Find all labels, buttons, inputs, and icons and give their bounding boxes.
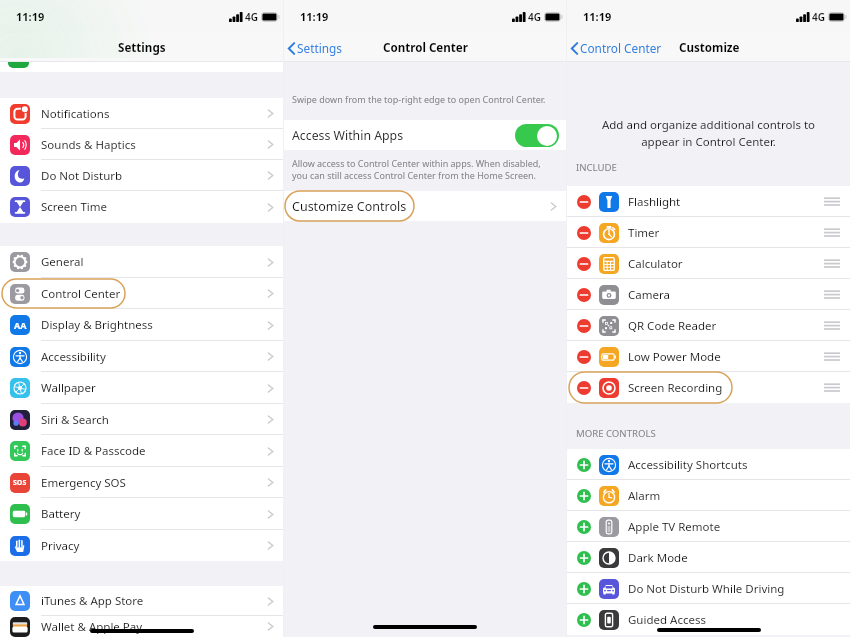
staticText: Customize Controls: [292, 198, 407, 215]
button[interactable]: Remove: [567, 310, 850, 341]
other: Remove: [577, 288, 591, 302]
staticText: Control Center: [41, 286, 121, 302]
staticText: INCLUDE: [576, 161, 617, 174]
button[interactable]: Access Within Apps: [284, 120, 566, 150]
other: Add: [577, 520, 591, 534]
other: Remove: [577, 226, 591, 240]
staticText: SOS: [13, 478, 27, 488]
staticText: Display & Brightness: [41, 317, 153, 333]
staticText: 4G: [812, 10, 825, 24]
staticText: Apple TV Remote: [628, 519, 721, 535]
button[interactable]: Back to Settings: [287, 40, 342, 56]
staticText: 11:19: [300, 9, 329, 24]
button[interactable]: Customize Controls: [284, 191, 566, 221]
button[interactable]: Remove: [567, 186, 850, 217]
other: Add: [577, 613, 591, 627]
button[interactable]: Add: [567, 542, 850, 573]
staticText: Timer: [628, 225, 660, 241]
staticText: Privacy: [41, 538, 80, 554]
staticText: Low Power Mode: [628, 349, 721, 365]
staticText: Control Center: [580, 40, 662, 56]
button[interactable]: Privacy: [0, 530, 283, 561]
staticText: Do Not Disturb While Driving: [628, 581, 785, 597]
button[interactable]: Remove: [567, 279, 850, 310]
button[interactable]: Wallpaper: [0, 372, 283, 404]
other: Reorder: [824, 352, 840, 361]
staticText: General: [41, 254, 84, 270]
other: Reorder: [824, 290, 840, 299]
staticText: QR Code Reader: [628, 318, 717, 334]
staticText: Siri & Search: [41, 412, 109, 428]
staticText: Customize: [679, 40, 740, 56]
staticText: Screen Recording: [628, 380, 723, 396]
staticText: 4G: [245, 10, 258, 24]
button[interactable]: Add: [567, 604, 850, 635]
button[interactable]: Add: [567, 449, 850, 480]
other: Remove: [577, 350, 591, 364]
staticText: Settings: [297, 40, 342, 56]
staticText: Access Within Apps: [292, 127, 404, 144]
staticText: Accessibility Shortcuts: [628, 457, 748, 473]
staticText: Do Not Disturb: [41, 168, 123, 184]
staticText: 11:19: [16, 9, 45, 24]
staticText: Allow access to Control Center within ap…: [292, 157, 541, 182]
staticText: Battery: [41, 506, 81, 522]
button[interactable]: Do Not Disturb: [0, 160, 283, 191]
staticText: iTunes & App Store: [41, 593, 144, 609]
button[interactable]: iTunes & App Store: [0, 586, 283, 616]
other: Add: [577, 458, 591, 472]
button[interactable]: Remove: [567, 248, 850, 279]
staticText: Screen Time: [41, 199, 108, 215]
button[interactable]: Sounds & Haptics: [0, 129, 283, 160]
button[interactable]: Notifications: [0, 98, 283, 129]
other: Remove: [577, 319, 591, 333]
staticText: Sounds & Haptics: [41, 137, 136, 153]
staticText: Calculator: [628, 256, 683, 272]
button[interactable]: Add: [567, 480, 850, 511]
button[interactable]: Siri & Search: [0, 404, 283, 435]
staticText: Face ID & Passcode: [41, 443, 146, 459]
button[interactable]: Accessibility: [0, 341, 283, 372]
staticText: Swipe down from the top-right edge to op…: [292, 93, 546, 105]
button[interactable]: General: [0, 246, 283, 278]
other: Reorder: [824, 197, 840, 206]
button[interactable]: Remove: [567, 372, 850, 403]
button[interactable]: Remove: [567, 341, 850, 372]
staticText: 11:19: [583, 9, 612, 24]
button[interactable]: AA: [0, 309, 283, 341]
button[interactable]: Wallet & Apple Pay: [0, 616, 283, 637]
other: Remove: [577, 257, 591, 271]
other: Reorder: [824, 259, 840, 268]
button[interactable]: Control Center: [0, 278, 283, 309]
staticText: Guided Access: [628, 612, 706, 628]
staticText: Settings: [118, 40, 166, 56]
other: Remove: [577, 381, 591, 395]
other: Reorder: [824, 383, 840, 392]
staticText: Camera: [628, 287, 670, 303]
staticText: Wallet & Apple Pay: [41, 619, 143, 635]
button[interactable]: SOS: [0, 467, 283, 498]
staticText: Notifications: [41, 106, 110, 122]
staticText: MORE CONTROLS: [576, 427, 656, 440]
other: Remove: [577, 195, 591, 209]
other: Add: [577, 489, 591, 503]
button[interactable]: Add: [567, 573, 850, 604]
staticText: Control Center: [383, 40, 468, 56]
button[interactable]: Add: [567, 511, 850, 542]
button[interactable]: Remove: [567, 217, 850, 248]
other: Add: [577, 551, 591, 565]
button[interactable]: Screen Time: [0, 191, 283, 223]
staticText: Dark Mode: [628, 550, 688, 566]
button[interactable]: Face ID & Passcode: [0, 435, 283, 467]
staticText: Wallpaper: [41, 380, 96, 396]
staticText: Accessibility: [41, 349, 106, 365]
staticText: Flashlight: [628, 194, 681, 210]
button[interactable]: Access Within Apps toggle, on: [515, 124, 559, 147]
button[interactable]: Back to Control Center: [570, 40, 662, 56]
other: Add: [577, 582, 591, 596]
button[interactable]: Battery: [0, 498, 283, 530]
staticText: Add and organize additional controls to …: [573, 117, 844, 150]
staticText: 4G: [528, 10, 541, 24]
other: Reorder: [824, 321, 840, 330]
staticText: Alarm: [628, 488, 661, 504]
